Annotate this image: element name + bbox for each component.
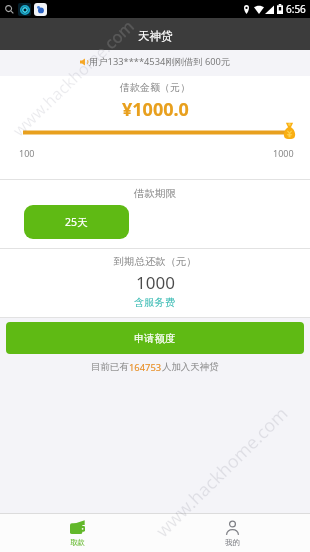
staticText: 天神贷 [138, 29, 173, 43]
staticText: 我的 [225, 538, 240, 547]
staticText: 借款金额（元） [120, 81, 190, 94]
staticText: ¥1000.0 [122, 97, 189, 122]
staticText: 目前已有 [91, 361, 129, 373]
staticText: 用户133****4534刚刚借到 600元 [89, 55, 231, 68]
button[interactable]: 申请额度 [6, 322, 304, 354]
staticText: 6:56 [286, 2, 306, 16]
button[interactable]: 25天 [24, 205, 129, 239]
button[interactable]: 用户133****4534刚刚借到 600元 [0, 50, 310, 73]
staticText: 25天 [65, 215, 88, 229]
button[interactable]: 我的 [155, 514, 310, 552]
button[interactable]: 含服务费 [134, 296, 176, 309]
staticText: 含服务费 [134, 296, 176, 309]
staticText: 申请额度 [134, 332, 176, 345]
button[interactable]: Loan amount slider [283, 122, 296, 139]
button[interactable]: 取款 [0, 514, 155, 552]
staticText: 164753 [129, 361, 162, 374]
staticText: 100 [19, 147, 35, 159]
staticText: 到期总还款（元） [114, 255, 197, 268]
staticText: 1000 [273, 147, 294, 159]
staticText: 借款期限 [134, 187, 176, 200]
staticText: 人加入天神贷 [162, 361, 219, 373]
staticText: 取款 [70, 538, 85, 547]
staticText: 1000 [136, 271, 175, 294]
